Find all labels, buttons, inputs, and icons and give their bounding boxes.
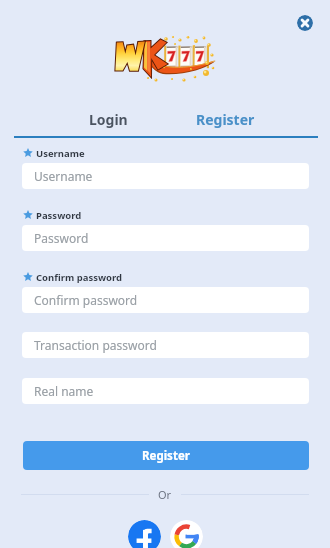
staticText: Password xyxy=(34,230,89,246)
button[interactable]: Real name xyxy=(22,378,309,404)
staticText: Username xyxy=(36,147,85,159)
staticText: Register xyxy=(142,448,190,464)
staticText: Real name xyxy=(34,383,94,399)
button[interactable]: Register xyxy=(167,110,284,129)
staticText: Or xyxy=(158,487,172,502)
button[interactable]: Username xyxy=(22,163,309,189)
button[interactable]: Register xyxy=(23,441,309,470)
staticText: Login xyxy=(89,110,128,129)
staticText: Username xyxy=(34,168,93,184)
button[interactable]: Transaction password xyxy=(22,332,309,358)
staticText: Confirm password xyxy=(34,292,138,308)
staticText: Transaction password xyxy=(34,337,157,353)
button[interactable]: Password xyxy=(22,225,309,251)
staticText: Register xyxy=(196,110,255,129)
staticText: Password xyxy=(36,209,82,221)
button[interactable]: Close xyxy=(297,15,313,31)
button[interactable]: Confirm password xyxy=(22,287,309,313)
button[interactable]: Sign in with Google xyxy=(170,520,203,548)
button[interactable]: Login xyxy=(50,110,167,129)
button[interactable]: Sign in with Facebook xyxy=(128,520,161,548)
staticText: Confirm password xyxy=(36,271,123,283)
